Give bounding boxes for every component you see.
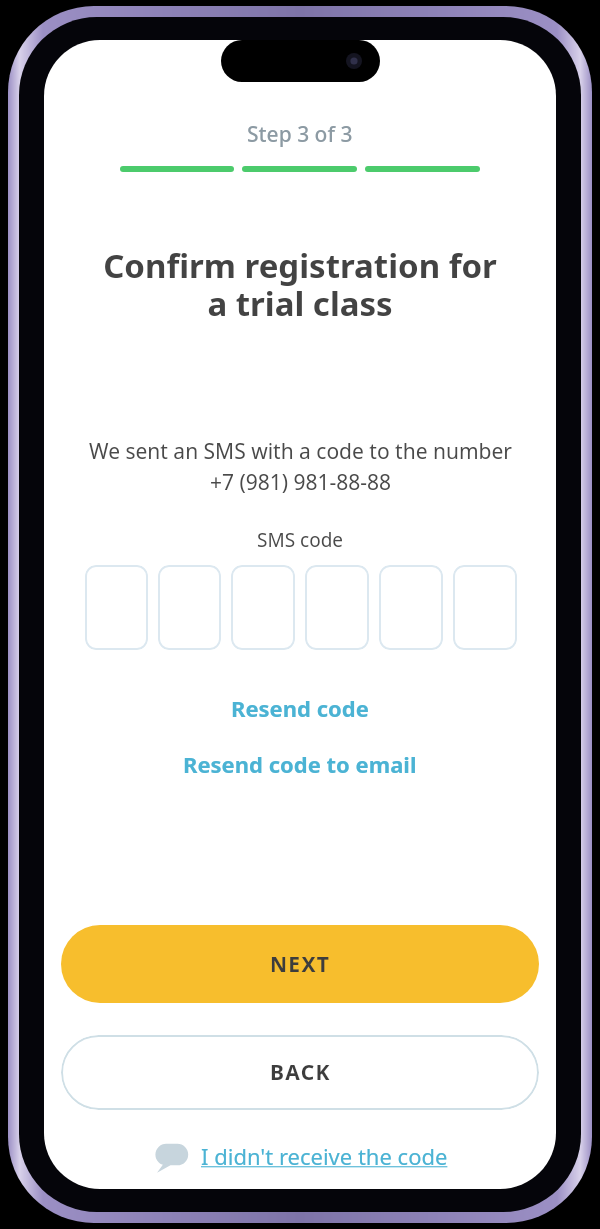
button[interactable]: Help [44,1138,556,1174]
button[interactable]: SMS code digit [453,565,517,650]
staticText: Confirm registration for a trial class [103,243,497,325]
button[interactable]: SMS code digit [85,565,148,650]
staticText: BACK [270,1058,331,1087]
button[interactable]: NEXT [61,925,539,1003]
staticText: Step 3 of 3 [247,120,353,149]
staticText: Resend code [231,693,369,723]
staticText: We sent an SMS with a code to the number… [89,437,512,496]
button[interactable]: BACK [61,1035,539,1110]
other: Help [153,1138,193,1174]
button[interactable]: Resend code [217,688,383,728]
staticText: Resend code to email [183,749,417,779]
button[interactable]: Resend code to email [169,744,431,784]
staticText: SMS code [257,527,344,553]
button[interactable]: SMS code digit [231,565,295,650]
button[interactable]: SMS code digit [158,565,221,650]
button[interactable]: SMS code digit [379,565,443,650]
button[interactable]: SMS code digit [305,565,369,650]
staticText: I didn't receive the code [201,1141,448,1171]
staticText: NEXT [270,950,331,979]
